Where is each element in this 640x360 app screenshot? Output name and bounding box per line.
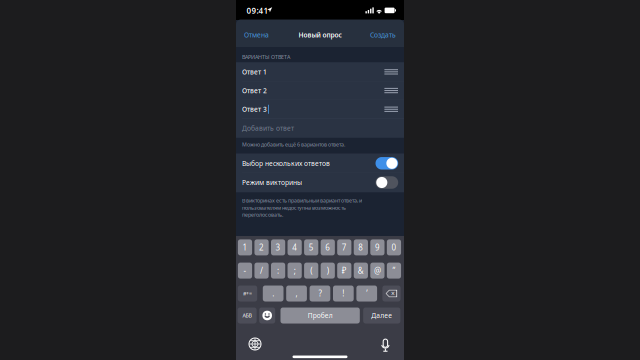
- button[interactable]: ,: [286, 285, 307, 301]
- button[interactable]: 8: [354, 239, 368, 255]
- staticText: @: [374, 265, 381, 276]
- staticText: 7: [342, 242, 347, 253]
- staticText: 6: [325, 242, 330, 253]
- staticText: Ответ 1: [242, 67, 267, 76]
- staticText: 4: [292, 242, 297, 253]
- staticText: 0: [391, 242, 396, 253]
- button[interactable]: Пробел: [280, 307, 360, 323]
- button[interactable]: ;: [288, 263, 302, 279]
- button[interactable]: 0: [387, 239, 401, 255]
- staticText: ;: [294, 265, 296, 276]
- button[interactable]: @: [370, 263, 384, 279]
- staticText: ×: [391, 289, 395, 298]
- staticText: Добавить ответ: [242, 124, 294, 132]
- staticText: 9: [375, 242, 380, 253]
- staticText: ВАРИАНТЫ ОТВЕТА: [242, 53, 290, 61]
- staticText: !: [342, 288, 344, 299]
- staticText: ₽: [342, 265, 347, 276]
- button[interactable]: Создать: [356, 21, 396, 49]
- staticText: 5: [309, 242, 314, 253]
- button[interactable]: Добавить ответ: [236, 119, 404, 137]
- button[interactable]: 6: [321, 239, 335, 255]
- button[interactable]: Выбор нескольких ответов: [236, 154, 404, 173]
- button[interactable]: .: [263, 285, 283, 301]
- staticText: :: [277, 265, 279, 276]
- button[interactable]: ): [321, 263, 335, 279]
- button[interactable]: АБВ: [238, 307, 257, 323]
- button[interactable]: Emoji: [259, 307, 275, 323]
- button[interactable]: 7: [337, 239, 351, 255]
- staticText: В викторинах есть правильный вариант отв…: [242, 197, 362, 218]
- staticText: Пробел: [308, 311, 333, 320]
- staticText: Далее: [371, 311, 392, 320]
- staticText: 8: [358, 242, 363, 253]
- staticText: Режим викторины: [242, 178, 302, 187]
- button[interactable]: ’: [356, 285, 377, 301]
- button[interactable]: 1: [238, 239, 252, 255]
- button[interactable]: 5: [304, 239, 318, 255]
- staticText: Отмена: [244, 31, 269, 39]
- staticText: Ответ 2: [242, 86, 267, 95]
- staticText: Создать: [370, 31, 396, 39]
- staticText: Ответ 3: [242, 105, 267, 114]
- button[interactable]: (: [304, 263, 318, 279]
- button[interactable]: Далее: [363, 307, 400, 323]
- staticText: Выбор нескольких ответов: [242, 159, 330, 168]
- staticText: ,: [296, 288, 298, 299]
- staticText: ?: [318, 288, 321, 299]
- staticText: Можно добавить ещё 6 вариантов ответа.: [242, 141, 345, 148]
- staticText: 09:41: [246, 5, 268, 16]
- staticText: 2: [259, 242, 264, 253]
- button[interactable]: ?: [310, 285, 330, 301]
- button[interactable]: 2: [254, 239, 269, 255]
- staticText: .: [272, 288, 274, 299]
- button[interactable]: /: [254, 263, 269, 279]
- button[interactable]: Delete: [382, 285, 401, 301]
- staticText: АБВ: [243, 312, 252, 319]
- button[interactable]: 3: [271, 239, 285, 255]
- staticText: (: [310, 265, 312, 276]
- button[interactable]: -: [238, 263, 252, 279]
- button[interactable]: 4: [288, 239, 302, 255]
- button[interactable]: Режим викторины: [236, 173, 404, 192]
- staticText: /: [260, 265, 263, 276]
- staticText: #+=: [243, 290, 252, 297]
- button[interactable]: ₽: [337, 263, 351, 279]
- staticText: 1: [242, 242, 247, 253]
- button[interactable]: #+=: [238, 285, 257, 301]
- button[interactable]: ”: [387, 263, 401, 279]
- staticText: &: [358, 265, 364, 276]
- button[interactable]: &: [354, 263, 368, 279]
- button[interactable]: !: [333, 285, 354, 301]
- staticText: -: [243, 265, 246, 276]
- button[interactable]: :: [271, 263, 285, 279]
- button[interactable]: Dictation: [381, 336, 390, 350]
- button[interactable]: Отмена: [244, 21, 284, 49]
- staticText: ’: [366, 288, 367, 299]
- button[interactable]: 9: [370, 239, 384, 255]
- staticText: Новый опрос: [298, 31, 341, 39]
- button[interactable]: Next keyboard: [249, 338, 261, 350]
- staticText: ”: [392, 265, 395, 276]
- staticText: 3: [276, 242, 281, 253]
- staticText: ): [327, 265, 329, 276]
